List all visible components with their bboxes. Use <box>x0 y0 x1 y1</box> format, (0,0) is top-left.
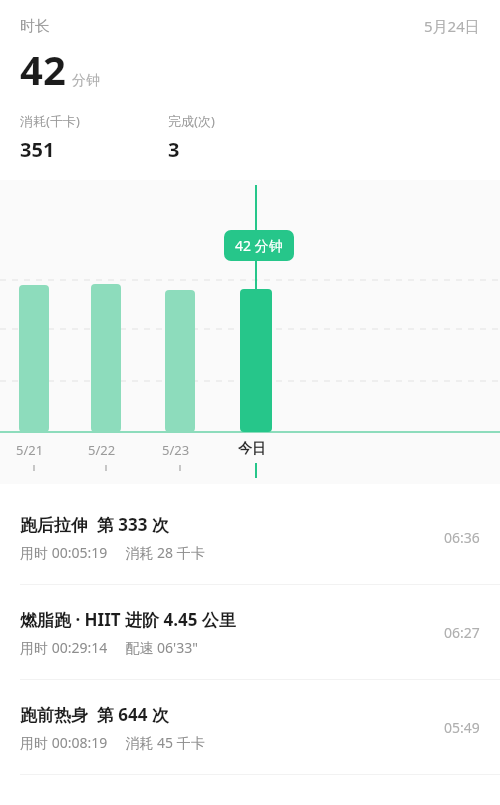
staticText: 跑后拉伸 第 333 次 <box>20 513 169 536</box>
staticText: 用时 00:08:19 消耗 45 千卡 <box>20 733 205 752</box>
staticText: 42 <box>20 42 66 96</box>
staticText: 跑前热身 第 644 次 <box>20 703 169 726</box>
staticText: 时长 <box>20 17 50 36</box>
staticText: 06:27 <box>444 623 480 642</box>
staticText: 351 <box>20 136 55 163</box>
button[interactable]: 跑前热身 第 644 次 <box>0 680 500 774</box>
staticText: 3 <box>168 136 180 163</box>
staticText: 分钟 <box>72 72 100 90</box>
button[interactable]: 42 分钟 <box>224 230 294 261</box>
staticText: 06:36 <box>444 528 480 547</box>
button[interactable]: 燃脂跑 · HIIT 进阶 4.45 公里 <box>0 585 500 679</box>
staticText: 今日 <box>238 440 266 458</box>
staticText: 燃脂跑 · HIIT 进阶 4.45 公里 <box>20 608 236 631</box>
staticText: 用时 00:29:14 配速 06'33" <box>20 638 198 657</box>
button[interactable]: 跑后拉伸 第 333 次 <box>0 490 500 584</box>
staticText: 42 分钟 <box>235 236 283 255</box>
staticText: 05:49 <box>444 718 480 737</box>
staticText: 消耗(千卡) <box>20 112 80 130</box>
staticText: 5/22 <box>88 441 116 459</box>
staticText: 5/21 <box>16 441 44 459</box>
staticText: 用时 00:05:19 消耗 28 千卡 <box>20 543 205 562</box>
staticText: 5/23 <box>162 441 190 459</box>
staticText: 完成(次) <box>168 112 215 130</box>
staticText: 5月24日 <box>424 16 480 36</box>
